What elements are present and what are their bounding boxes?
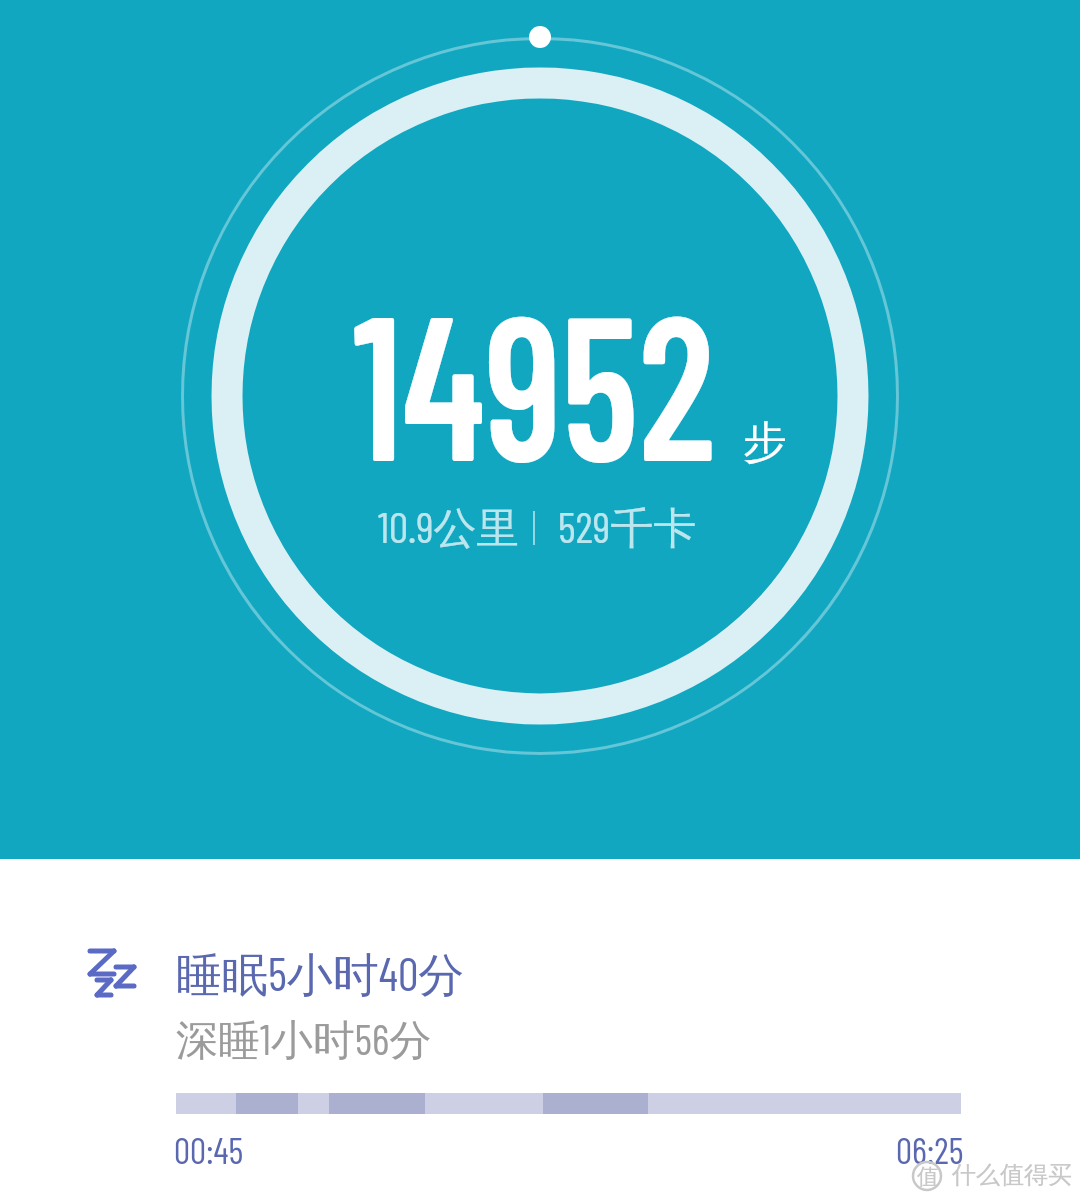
staticText: 00:45 (174, 1128, 244, 1171)
staticText: 值 (917, 1163, 939, 1191)
staticText: 步 (743, 415, 787, 470)
staticText: 14952 (353, 257, 715, 502)
staticText: 深睡1小时56分 (176, 1013, 432, 1067)
staticText: 10.9公里 (378, 500, 520, 556)
staticText: 06:25 (896, 1128, 964, 1171)
staticText: 睡眠5小时40分 (176, 945, 465, 1005)
staticText: 529千卡 (558, 500, 697, 556)
button[interactable]: 14952 (0, 0, 1080, 859)
button[interactable]: 睡眠5小时40分 (0, 859, 1080, 1200)
staticText: 什么值得买 (952, 1160, 1072, 1190)
